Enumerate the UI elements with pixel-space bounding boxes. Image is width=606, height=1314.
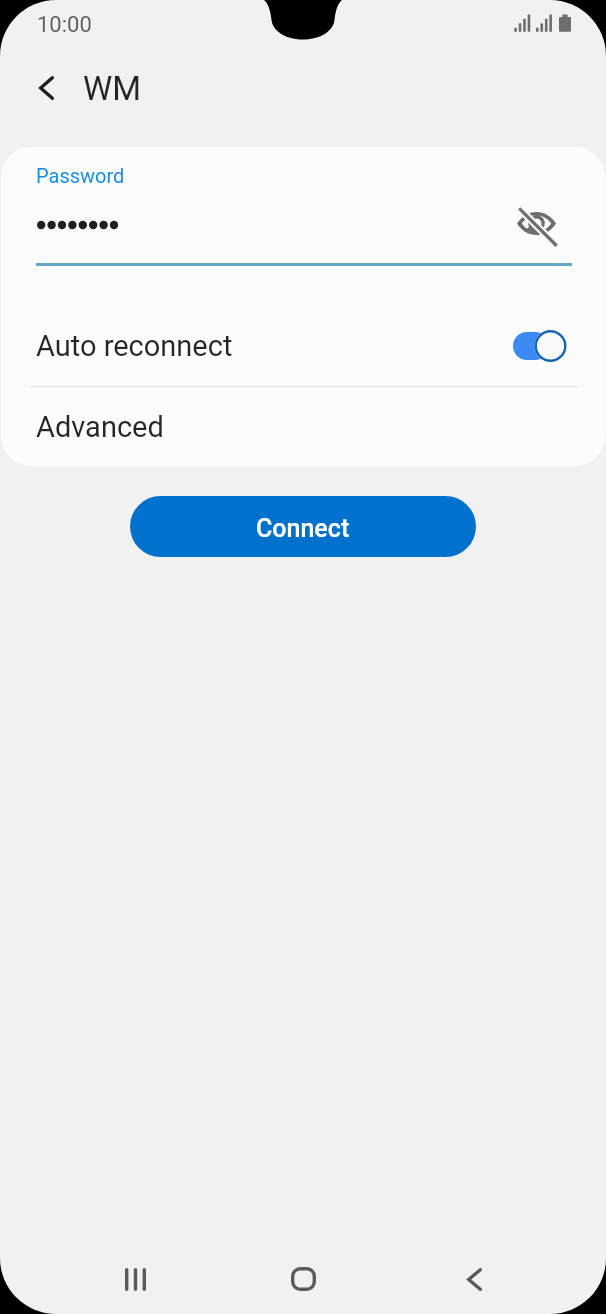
staticText: 10:00	[37, 12, 92, 38]
button[interactable]: Home	[271, 1247, 335, 1311]
button[interactable]: Auto reconnect	[1, 306, 605, 386]
button[interactable]: Show password	[510, 197, 562, 249]
button[interactable]: Back	[442, 1247, 506, 1311]
button[interactable]: Connect	[130, 496, 476, 557]
staticText: Connect	[256, 514, 350, 543]
button[interactable]: Advanced	[1, 387, 605, 466]
button[interactable]: Back	[18, 60, 74, 116]
staticText: Auto reconnect	[36, 329, 522, 363]
staticText: WM	[83, 69, 142, 108]
button[interactable]	[513, 329, 567, 363]
button[interactable]: Recents	[103, 1247, 167, 1311]
staticText: Password	[36, 164, 125, 187]
staticText: Advanced	[36, 410, 164, 444]
